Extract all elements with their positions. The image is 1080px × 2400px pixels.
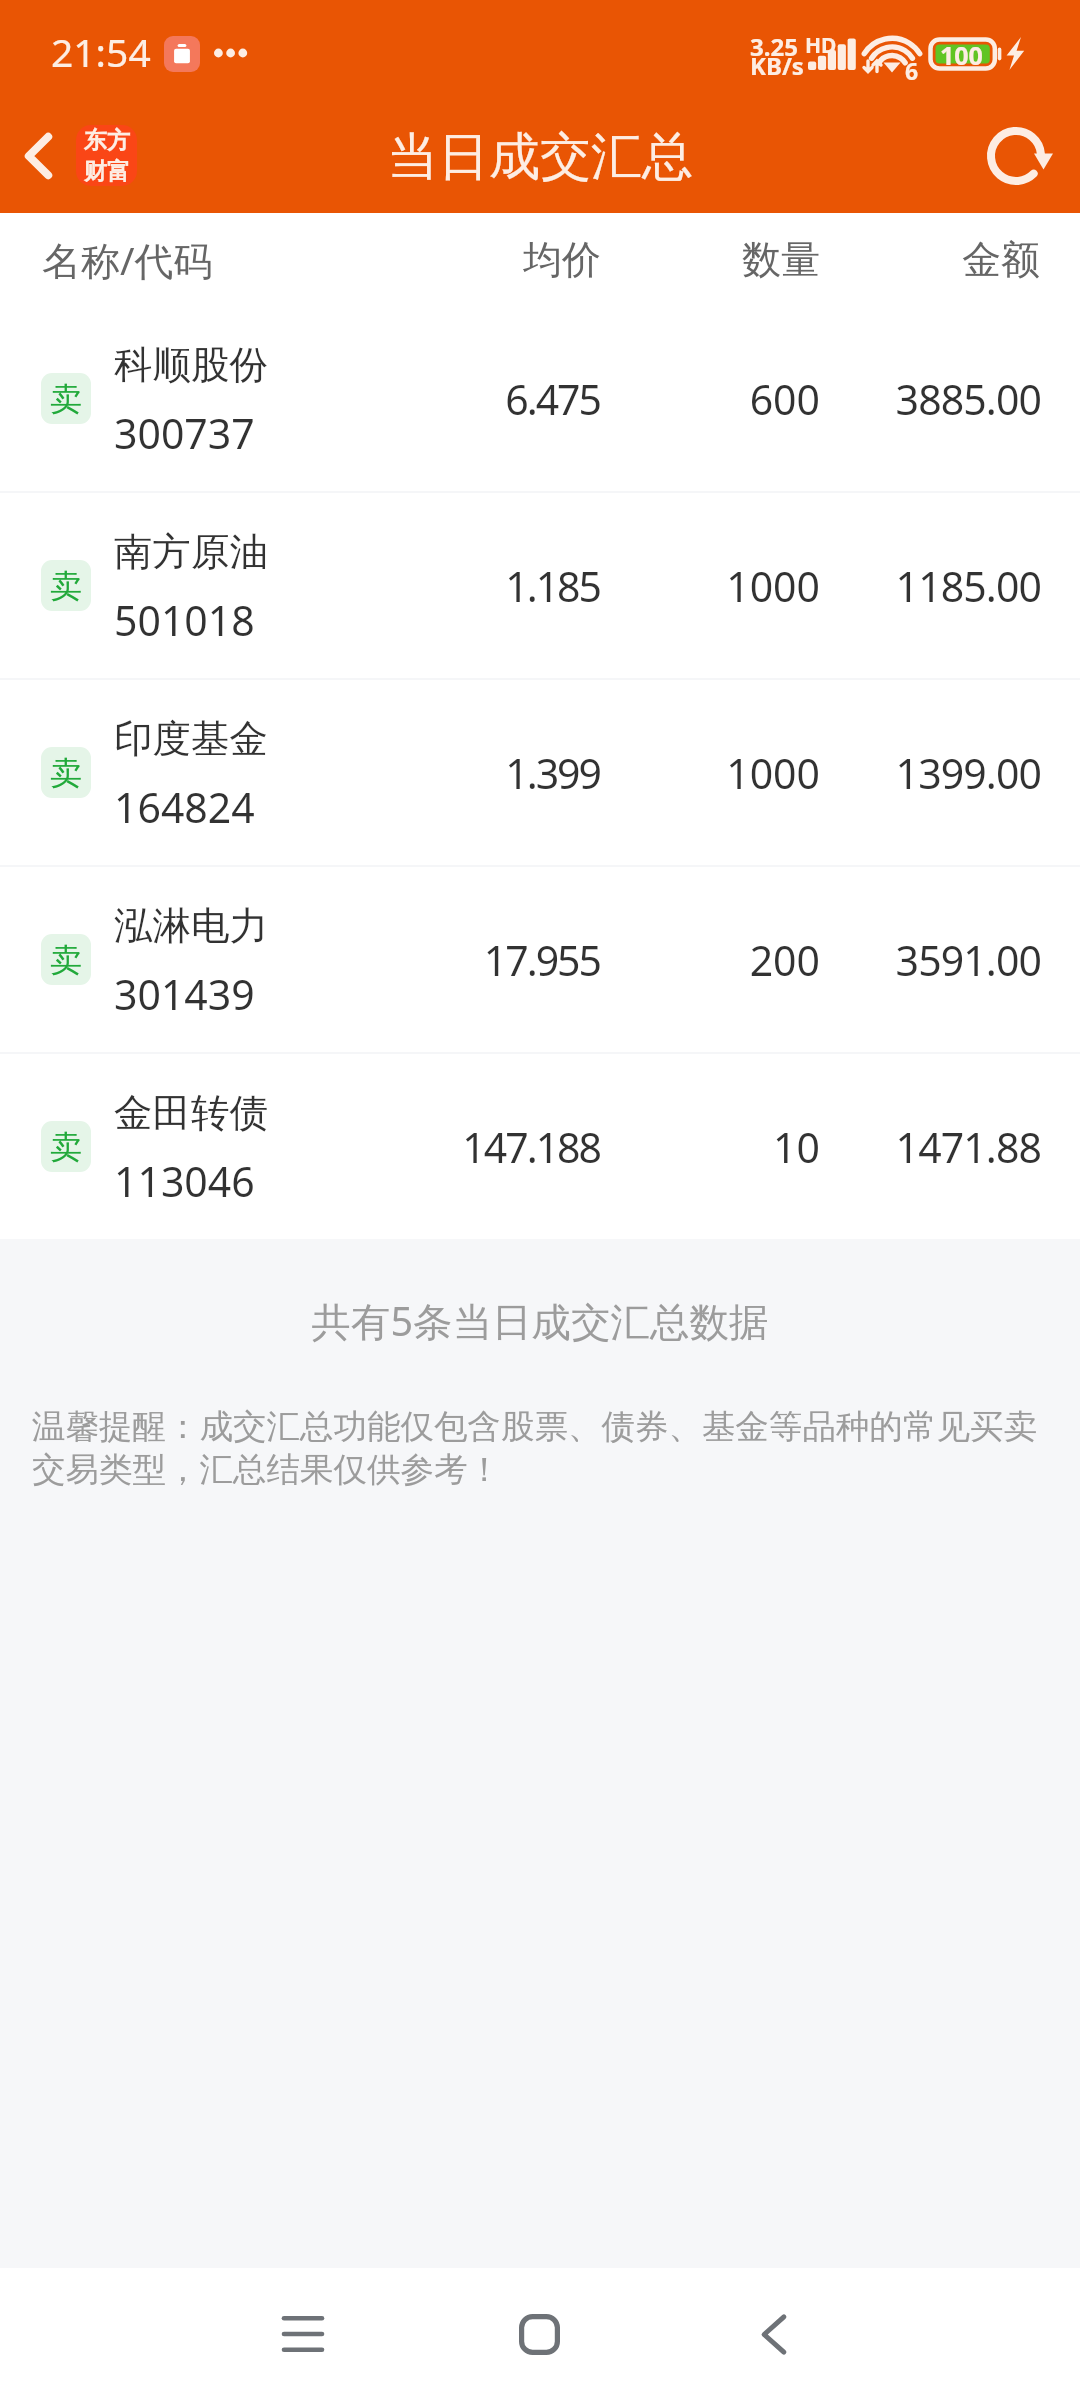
staticText: 金田转债 [114, 1089, 268, 1138]
staticText: HD [805, 31, 837, 60]
staticText: 6.475 [340, 371, 600, 427]
staticText: 1399.00 [839, 745, 1041, 801]
staticText: 113046 [114, 1153, 255, 1209]
staticText: 300737 [114, 405, 255, 461]
staticText: 金额 [962, 235, 1040, 284]
button[interactable]: Recent apps [243, 2274, 363, 2394]
staticText: 1.185 [340, 558, 600, 614]
staticText: 10 [620, 1119, 820, 1175]
staticText: 301439 [114, 966, 255, 1022]
staticText: 600 [620, 371, 820, 427]
staticText: 印度基金 [114, 715, 268, 764]
staticText: 1000 [620, 745, 820, 801]
staticText: 100 [940, 38, 983, 70]
button[interactable]: 卖 [0, 493, 1080, 678]
staticText: 164824 [114, 779, 255, 835]
staticText: 名称/代码 [42, 233, 213, 286]
button[interactable]: 卖 [0, 680, 1080, 865]
staticText: 均价 [523, 235, 601, 284]
staticText: 1.399 [340, 745, 600, 801]
button[interactable]: Home [479, 2274, 599, 2394]
button[interactable]: Refresh [979, 117, 1057, 195]
staticText: KB/s [750, 49, 804, 82]
staticText: 卖 [50, 753, 82, 793]
button[interactable]: 卖 [0, 867, 1080, 1052]
staticText: 数量 [742, 235, 820, 284]
staticText: 3885.00 [839, 371, 1041, 427]
button[interactable]: 卖 [0, 306, 1080, 491]
staticText: 卖 [50, 379, 82, 419]
staticText: 卖 [50, 940, 82, 980]
staticText: 501018 [114, 592, 255, 648]
staticText: 1471.88 [839, 1119, 1041, 1175]
staticText: 卖 [50, 1127, 82, 1167]
staticText: 3.25 [750, 30, 798, 63]
staticText: 卖 [50, 566, 82, 606]
staticText: 当日成交汇总 [387, 125, 693, 189]
staticText: 财富 [84, 157, 130, 186]
staticText: 3591.00 [839, 932, 1041, 988]
staticText: 科顺股份 [114, 341, 268, 390]
button[interactable]: 卖 [0, 1054, 1080, 1239]
button[interactable]: Back [0, 131, 154, 192]
staticText: 17.955 [340, 932, 600, 988]
staticText: 21:54 [51, 25, 151, 78]
staticText: 温馨提醒：成交汇总功能仅包含股票、债券、基金等品种的常见买卖交易类型，汇总结果仅… [32, 1406, 1050, 1491]
staticText: 200 [620, 932, 820, 988]
staticText: 南方原油 [114, 528, 268, 577]
staticText: 共有5条当日成交汇总数据 [0, 1294, 1080, 1348]
button[interactable]: Back [714, 2274, 834, 2394]
staticText: 147.188 [340, 1119, 600, 1175]
staticText: 6 [905, 55, 919, 86]
staticText: 1000 [620, 558, 820, 614]
staticText: 1185.00 [839, 558, 1041, 614]
staticText: 泓淋电力 [114, 902, 268, 951]
staticText: 东方 [84, 126, 130, 155]
